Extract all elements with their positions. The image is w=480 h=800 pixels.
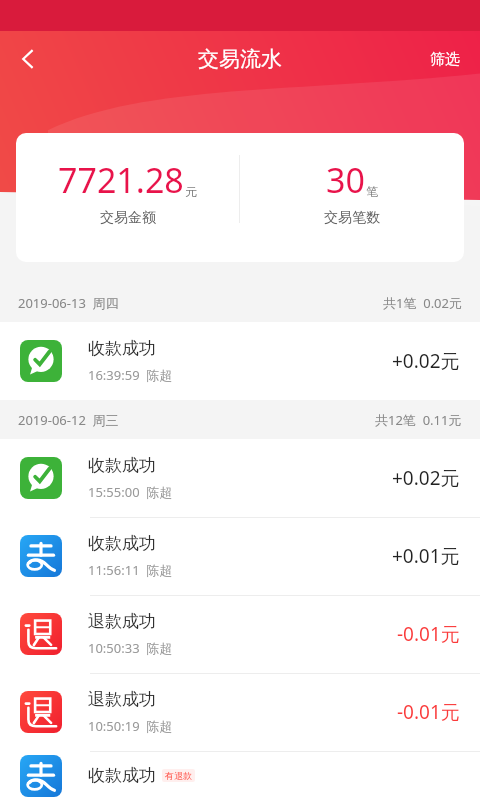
- staticText: 筛选: [430, 50, 460, 69]
- staticText: 30: [326, 157, 365, 203]
- staticText: 2019-06-12 周三: [18, 411, 119, 429]
- staticText: 共12笔 0.11元: [375, 411, 462, 429]
- staticText: +0.02元: [392, 465, 460, 491]
- staticText: 10:50:33 陈超: [88, 639, 173, 657]
- staticText: +0.02元: [392, 348, 460, 374]
- staticText: 退款成功: [88, 689, 156, 710]
- staticText: -0.01元: [397, 621, 460, 647]
- staticText: 有退款: [165, 770, 192, 781]
- staticText: 交易笔数: [324, 209, 380, 227]
- staticText: 笔: [366, 184, 378, 199]
- staticText: 收款成功: [88, 338, 156, 359]
- button[interactable]: 收款成功: [0, 517, 480, 595]
- staticText: 交易金额: [100, 209, 156, 227]
- staticText: -0.01元: [397, 699, 460, 725]
- button[interactable]: 收款成功: [0, 322, 480, 400]
- staticText: 10:50:19 陈超: [88, 717, 173, 735]
- button[interactable]: 筛选: [422, 42, 468, 77]
- staticText: 收款成功: [88, 533, 156, 554]
- staticText: 2019-06-13 周四: [18, 294, 119, 312]
- button[interactable]: 收款成功: [0, 751, 480, 800]
- staticText: 交易流水: [198, 46, 282, 72]
- staticText: 收款成功: [88, 455, 156, 476]
- button[interactable]: 7721.28: [16, 133, 464, 262]
- button[interactable]: 收款成功: [0, 439, 480, 517]
- staticText: 共1笔 0.02元: [383, 294, 462, 312]
- staticText: 收款成功: [88, 765, 156, 786]
- button[interactable]: 退款成功: [0, 673, 480, 751]
- staticText: 7721.28: [58, 157, 184, 203]
- staticText: +0.01元: [392, 543, 460, 569]
- staticText: 16:39:59 陈超: [88, 366, 173, 384]
- staticText: 退款成功: [88, 611, 156, 632]
- staticText: 元: [185, 184, 197, 199]
- button[interactable]: Back: [0, 31, 56, 87]
- staticText: 15:55:00 陈超: [88, 483, 173, 501]
- staticText: 11:56:11 陈超: [88, 561, 173, 579]
- button[interactable]: 退款成功: [0, 595, 480, 673]
